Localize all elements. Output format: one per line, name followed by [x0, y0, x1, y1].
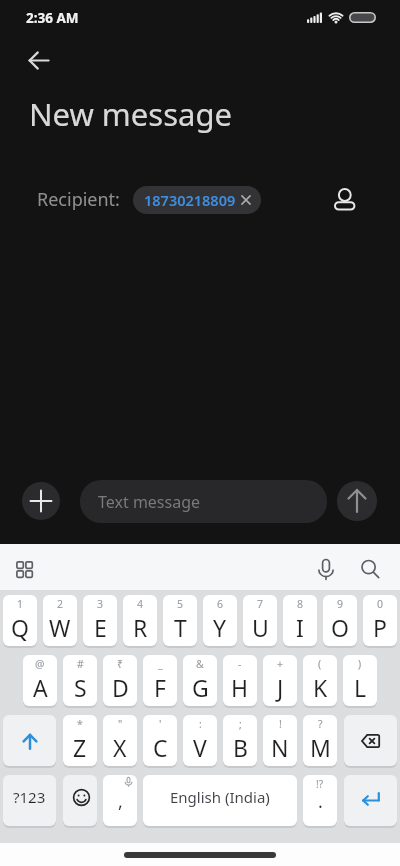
staticText: ;: [239, 717, 242, 731]
button[interactable]: 5: [163, 595, 197, 646]
staticText: .: [318, 789, 323, 814]
staticText: Recipient:: [37, 187, 120, 212]
button[interactable]: 7: [243, 595, 277, 646]
button[interactable]: 8: [283, 595, 317, 646]
button[interactable]: 1: [3, 595, 37, 646]
staticText: 2: [57, 597, 64, 611]
button[interactable]: ): [343, 655, 377, 706]
button[interactable]: ;: [223, 715, 257, 766]
staticText: F: [154, 672, 166, 703]
staticText: M: [310, 732, 331, 763]
staticText: V: [193, 732, 207, 763]
staticText: 3: [97, 597, 104, 611]
button[interactable]: Text message: [80, 480, 327, 523]
staticText: 0: [377, 597, 384, 611]
staticText: 4: [137, 597, 144, 611]
button[interactable]: !: [263, 715, 297, 766]
staticText: A: [33, 672, 48, 703]
button[interactable]: [344, 715, 397, 766]
button[interactable]: _: [143, 655, 177, 706]
staticText: 18730218809: [144, 190, 236, 210]
button[interactable]: [337, 481, 377, 521]
staticText: I: [296, 612, 304, 643]
staticText: ": [118, 717, 123, 731]
staticText: L: [354, 672, 367, 703]
staticText: K: [313, 672, 328, 703]
staticText: @: [35, 657, 45, 671]
staticText: 2:36 AM: [26, 9, 79, 27]
staticText: W: [49, 612, 71, 643]
staticText: &: [196, 657, 204, 671]
button[interactable]: ,: [103, 775, 137, 826]
button[interactable]: @: [23, 655, 57, 706]
staticText: 1: [17, 597, 24, 611]
button[interactable]: !?: [303, 775, 337, 826]
button[interactable]: :: [183, 715, 217, 766]
button[interactable]: ₹: [103, 655, 137, 706]
button[interactable]: *: [63, 715, 97, 766]
button[interactable]: [310, 551, 342, 587]
button[interactable]: [22, 482, 60, 520]
staticText: 9: [337, 597, 344, 611]
button[interactable]: &: [183, 655, 217, 706]
button[interactable]: 18730218809: [133, 186, 261, 214]
staticText: ,: [118, 789, 123, 814]
staticText: 7: [257, 597, 264, 611]
staticText: T: [174, 612, 187, 643]
button[interactable]: [8, 553, 41, 586]
staticText: Text message: [98, 491, 201, 513]
staticText: J: [277, 672, 284, 703]
staticText: U: [252, 612, 269, 643]
staticText: E: [94, 612, 107, 643]
staticText: 8: [297, 597, 304, 611]
staticText: 5: [177, 597, 184, 611]
button[interactable]: ?: [303, 715, 337, 766]
button[interactable]: 9: [323, 595, 357, 646]
button[interactable]: [63, 775, 97, 826]
staticText: *: [77, 717, 83, 731]
button[interactable]: -: [223, 655, 257, 706]
staticText: C: [153, 732, 168, 763]
button[interactable]: ': [143, 715, 177, 766]
staticText: (: [318, 657, 322, 671]
staticText: :: [199, 717, 202, 731]
staticText: ': [159, 717, 162, 731]
staticText: H: [231, 672, 249, 703]
staticText: Y: [213, 612, 227, 643]
staticText: -: [238, 657, 242, 671]
button[interactable]: [3, 715, 56, 766]
button[interactable]: #: [63, 655, 97, 706]
button[interactable]: [328, 181, 362, 215]
button[interactable]: ": [103, 715, 137, 766]
staticText: ?123: [13, 787, 46, 807]
button[interactable]: ?123: [3, 775, 56, 826]
button[interactable]: [20, 44, 58, 76]
button[interactable]: 6: [203, 595, 237, 646]
staticText: S: [74, 672, 87, 703]
staticText: ?: [318, 717, 323, 731]
button[interactable]: (: [303, 655, 337, 706]
button[interactable]: [354, 551, 388, 587]
staticText: !: [279, 717, 282, 731]
staticText: #: [77, 657, 84, 671]
button[interactable]: English (India): [143, 775, 297, 826]
staticText: O: [331, 612, 349, 643]
button[interactable]: +: [263, 655, 297, 706]
button[interactable]: 3: [83, 595, 117, 646]
staticText: N: [271, 732, 289, 763]
staticText: _: [158, 657, 163, 671]
staticText: ₹: [117, 657, 124, 671]
staticText: R: [133, 612, 148, 643]
staticText: Z: [73, 732, 87, 763]
staticText: G: [192, 672, 209, 703]
staticText: 6: [217, 597, 224, 611]
staticText: +: [277, 657, 284, 671]
staticText: P: [373, 612, 387, 643]
button[interactable]: 0: [363, 595, 397, 646]
button[interactable]: 4: [123, 595, 157, 646]
button[interactable]: 2: [43, 595, 77, 646]
staticText: English (India): [170, 787, 270, 807]
staticText: D: [112, 672, 129, 703]
button[interactable]: [344, 775, 397, 826]
staticText: ): [358, 657, 362, 671]
